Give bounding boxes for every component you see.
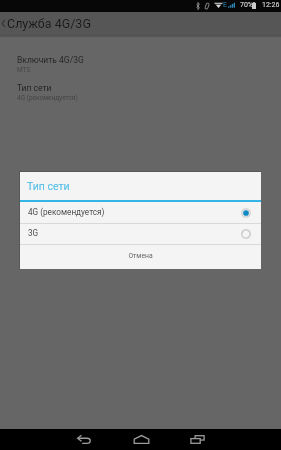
staticText: MTS <box>17 66 31 74</box>
button[interactable]: Navigate up <box>0 12 7 35</box>
staticText: Служба 4G/3G <box>7 16 91 31</box>
button[interactable]: 3G <box>20 224 261 244</box>
button[interactable]: Back <box>70 429 98 450</box>
staticText: 4G (рекомендуется) <box>28 207 105 217</box>
button[interactable]: Включить 4G/3G <box>0 55 281 74</box>
staticText: Тип сети <box>27 180 70 192</box>
button[interactable]: Home <box>127 429 155 450</box>
button[interactable]: 4G (рекомендуется) <box>20 202 261 223</box>
staticText: 12:26 <box>262 1 280 9</box>
button[interactable]: Отмена <box>20 245 261 269</box>
staticText: Отмена <box>128 252 153 260</box>
staticText: 3G <box>28 228 39 238</box>
button[interactable]: Recent apps <box>183 429 211 450</box>
staticText: 70% <box>240 1 253 9</box>
staticText: E <box>223 1 227 9</box>
staticText: Включить 4G/3G <box>17 55 84 65</box>
button[interactable]: Тип сети <box>0 83 281 102</box>
staticText: Тип сети <box>17 83 52 93</box>
staticText: 4G (рекомендуется) <box>17 94 78 102</box>
